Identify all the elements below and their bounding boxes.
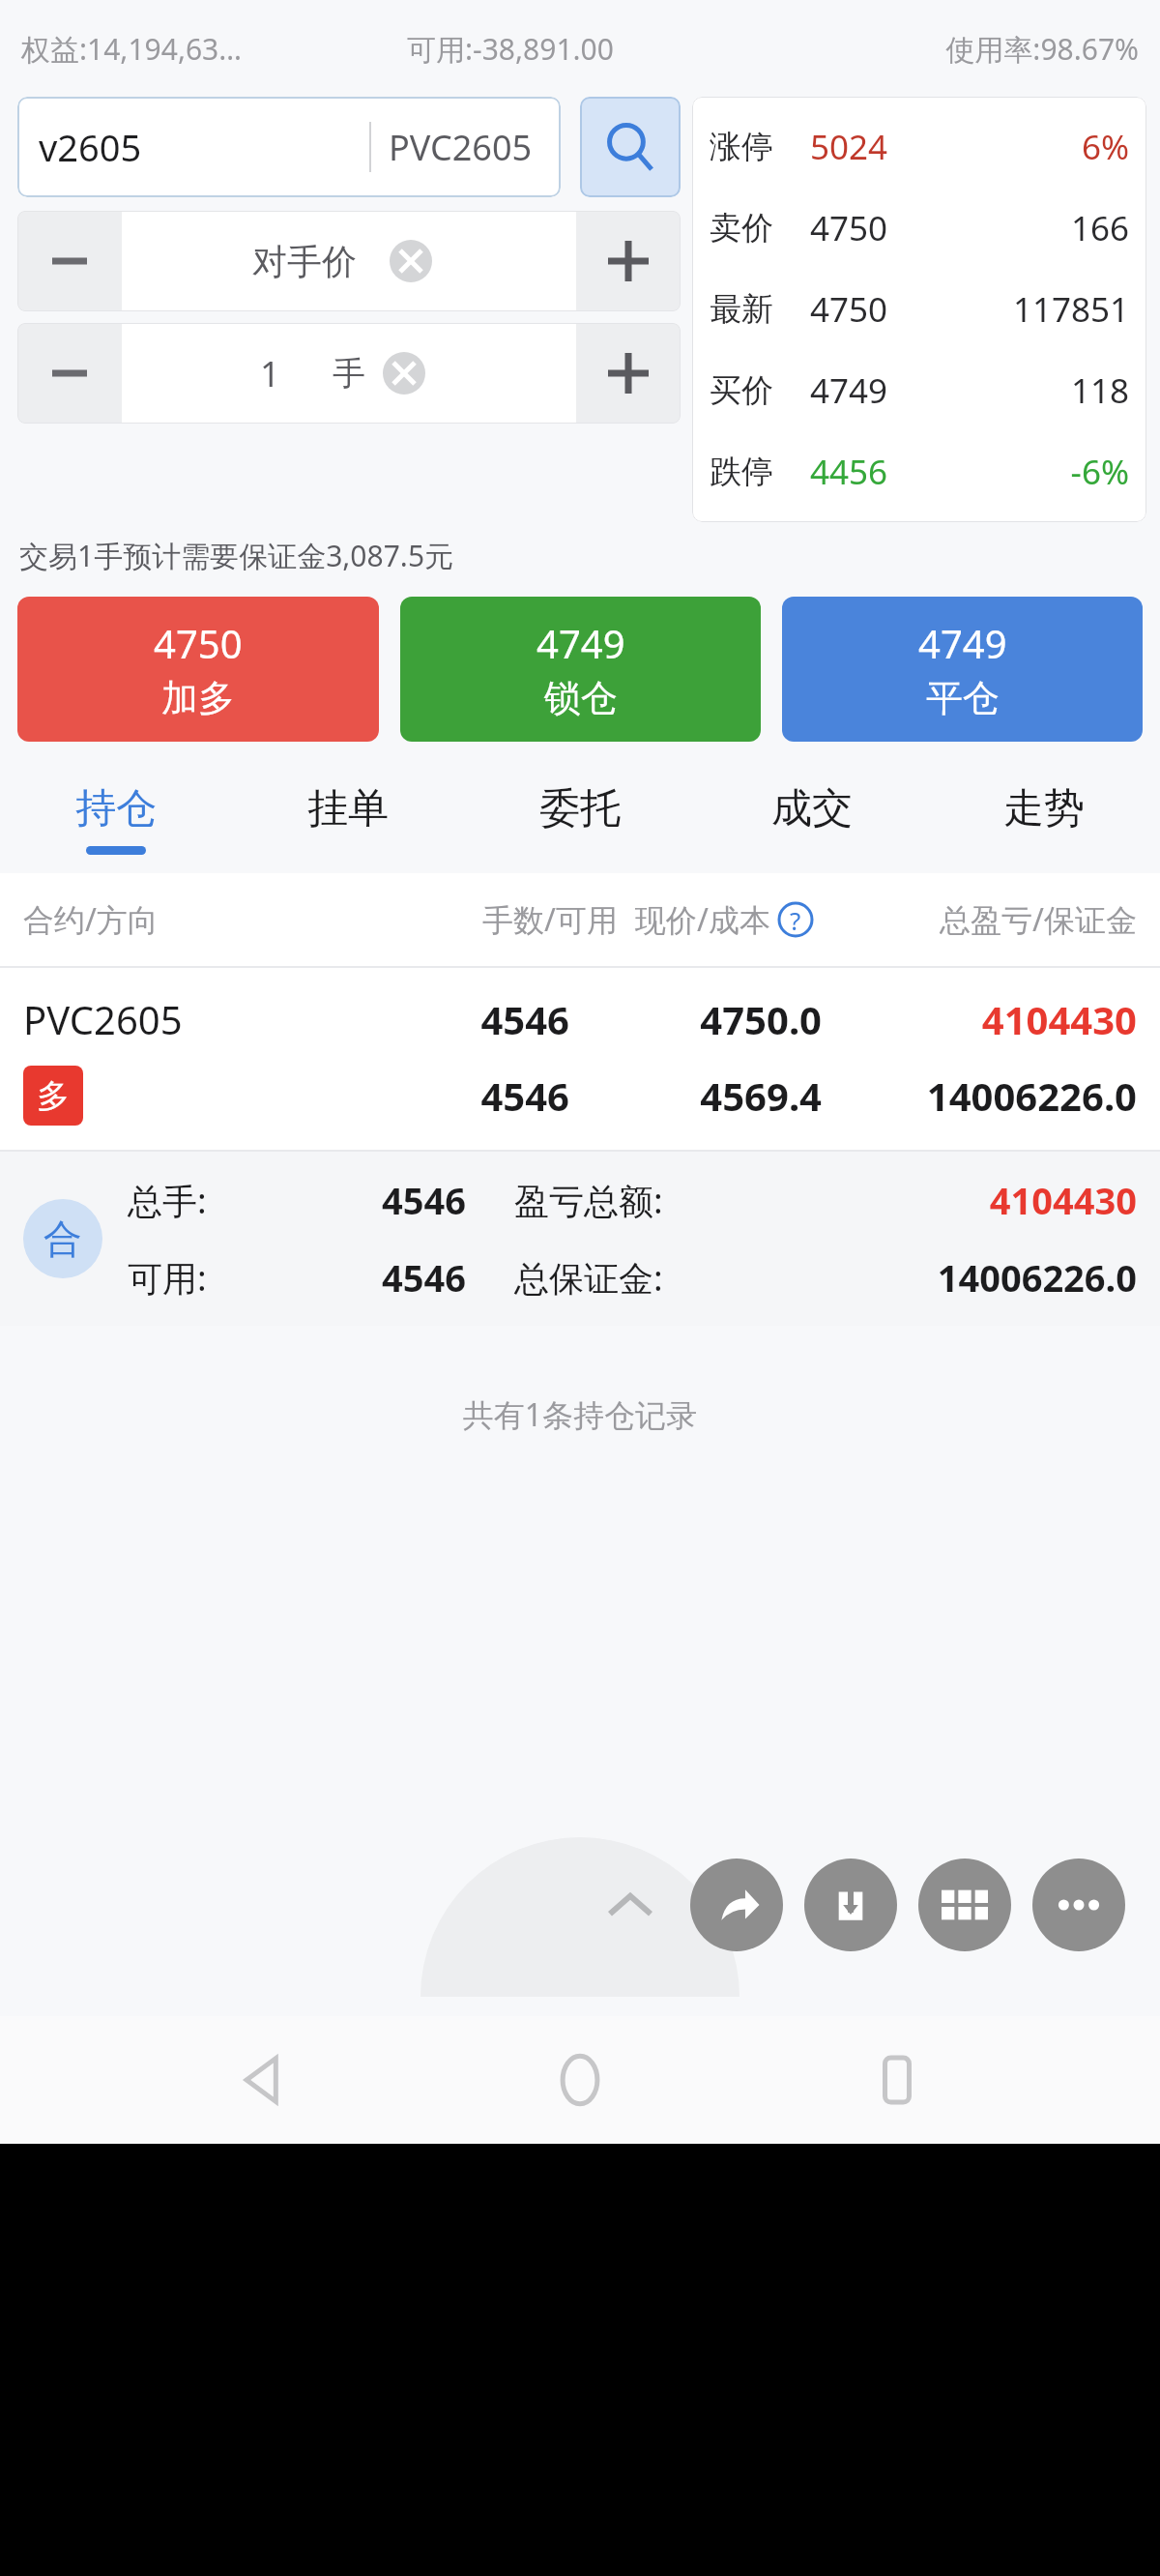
- button[interactable]: 最近任务: [844, 2027, 950, 2133]
- staticText: v2605: [39, 122, 142, 172]
- button[interactable]: 走势: [928, 765, 1160, 873]
- staticText: ?: [790, 903, 801, 937]
- button[interactable]: 挂单: [232, 765, 464, 873]
- staticText: 手: [333, 353, 365, 395]
- button[interactable]: PVC2605: [0, 968, 1160, 1150]
- staticText: 4104430: [822, 993, 1137, 1045]
- staticText: 对手价: [252, 240, 357, 283]
- staticText: 锁仓: [544, 675, 618, 721]
- staticText: 总盈亏/保证金: [823, 898, 1137, 941]
- button[interactable]: 返回: [211, 2027, 317, 2133]
- staticText: 可用:: [128, 1254, 273, 1302]
- staticText: 4750.0: [569, 993, 822, 1045]
- button[interactable]: 说明: [776, 900, 815, 939]
- staticText: 总手:: [128, 1177, 273, 1224]
- staticText: 4749: [536, 617, 625, 669]
- staticText: 委托: [539, 783, 621, 834]
- staticText: -6%: [945, 449, 1129, 495]
- button[interactable]: 涨停: [692, 97, 1146, 522]
- button[interactable]: 展开: [584, 1859, 677, 1951]
- staticText: 6%: [945, 124, 1129, 170]
- staticText: 4750: [810, 205, 945, 251]
- staticText: 使用率:98.67%: [782, 29, 1139, 69]
- button[interactable]: 搜索: [580, 97, 681, 197]
- staticText: 4749: [810, 367, 945, 414]
- staticText: 14006226.0: [663, 1252, 1137, 1303]
- button[interactable]: 委托: [464, 765, 696, 873]
- staticText: PVC2605: [23, 993, 344, 1045]
- staticText: 可用:-38,891.00: [407, 29, 782, 69]
- button[interactable]: 清除: [390, 240, 432, 282]
- button[interactable]: 减少: [17, 323, 122, 424]
- staticText: 权益:14,194,63…: [21, 29, 407, 69]
- staticText: 4104430: [663, 1175, 1137, 1225]
- staticText: 成交: [771, 783, 853, 834]
- button[interactable]: v2605: [17, 97, 561, 197]
- staticText: 4749: [918, 617, 1007, 669]
- staticText: 5024: [810, 124, 945, 170]
- staticText: 交易1手预计需要保证金3,087.5元: [19, 536, 454, 575]
- staticText: 手数/可用: [347, 898, 618, 941]
- staticText: 涨停: [710, 127, 810, 167]
- staticText: 合: [43, 1215, 82, 1263]
- staticText: 加多: [161, 675, 235, 721]
- staticText: 挂单: [307, 783, 389, 834]
- button[interactable]: 4749: [782, 597, 1143, 742]
- staticText: 最新: [710, 289, 810, 330]
- staticText: 平仓: [926, 675, 1000, 721]
- staticText: 共有1条持仓记录: [0, 1393, 1160, 1436]
- staticText: 4546: [273, 1175, 466, 1225]
- button[interactable]: 应用: [918, 1859, 1011, 1951]
- staticText: 买价: [710, 370, 810, 411]
- staticText: 持仓: [75, 783, 157, 834]
- staticText: 14006226.0: [822, 1069, 1137, 1122]
- staticText: 118: [945, 367, 1129, 414]
- staticText: 合约/方向: [23, 898, 347, 941]
- staticText: 跌停: [710, 452, 810, 492]
- button[interactable]: 减少: [17, 211, 122, 311]
- staticText: 117851: [945, 286, 1129, 333]
- staticText: 4456: [810, 449, 945, 495]
- button[interactable]: 增加: [576, 211, 681, 311]
- button[interactable]: 4750: [17, 597, 379, 742]
- staticText: 4750: [810, 286, 945, 333]
- staticText: 4750: [154, 617, 243, 669]
- staticText: 1: [260, 350, 280, 397]
- button[interactable]: 对手价: [122, 211, 576, 311]
- staticText: 走势: [1003, 783, 1085, 834]
- staticText: PVC2605: [389, 124, 561, 171]
- button[interactable]: 持仓: [0, 765, 232, 873]
- button[interactable]: 成交: [696, 765, 928, 873]
- button[interactable]: 增加: [576, 323, 681, 424]
- button[interactable]: 合: [0, 1152, 1160, 1326]
- staticText: 总保证金:: [514, 1254, 663, 1302]
- staticText: 4546: [344, 1069, 569, 1122]
- staticText: 4546: [344, 993, 569, 1045]
- staticText: 现价/成本: [635, 898, 770, 941]
- staticText: 多: [37, 1075, 70, 1117]
- staticText: 卖价: [710, 208, 810, 249]
- button[interactable]: 1: [122, 323, 576, 424]
- staticText: 4569.4: [569, 1069, 822, 1122]
- button[interactable]: 更多: [1032, 1859, 1125, 1951]
- button[interactable]: 下载: [804, 1859, 897, 1951]
- staticText: 盈亏总额:: [514, 1177, 663, 1224]
- staticText: 4546: [273, 1252, 466, 1303]
- staticText: 166: [945, 205, 1129, 251]
- button[interactable]: 清除: [383, 352, 425, 395]
- button[interactable]: 分享: [690, 1859, 783, 1951]
- button[interactable]: 主页: [527, 2027, 633, 2133]
- button[interactable]: 4749: [400, 597, 761, 742]
